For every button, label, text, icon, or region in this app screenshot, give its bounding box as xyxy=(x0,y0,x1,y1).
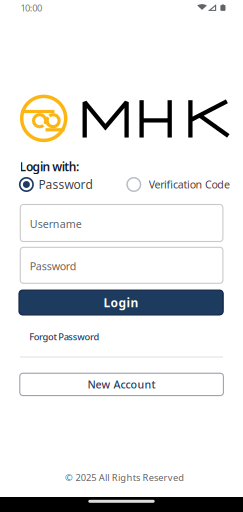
button[interactable]: Verification Code xyxy=(126,176,230,192)
staticText: Login with: xyxy=(20,159,79,175)
staticText: Password xyxy=(39,176,93,192)
staticText: 10:00 xyxy=(20,2,42,14)
button[interactable]: Password xyxy=(20,247,223,283)
button[interactable]: Forgot Password xyxy=(29,330,139,343)
staticText: New Account xyxy=(88,377,156,391)
staticText: Username xyxy=(30,217,82,231)
staticText: Forgot Password xyxy=(29,330,99,343)
button[interactable]: Login xyxy=(19,290,223,315)
staticText: Password xyxy=(30,259,77,273)
button[interactable]: Username xyxy=(20,204,223,241)
staticText: Login xyxy=(104,294,139,310)
button[interactable]: New Account xyxy=(20,373,223,395)
staticText: Verification Code xyxy=(149,177,230,191)
button[interactable]: Password xyxy=(18,176,88,192)
staticText: © 2025 All Rights Reserved xyxy=(65,471,184,484)
